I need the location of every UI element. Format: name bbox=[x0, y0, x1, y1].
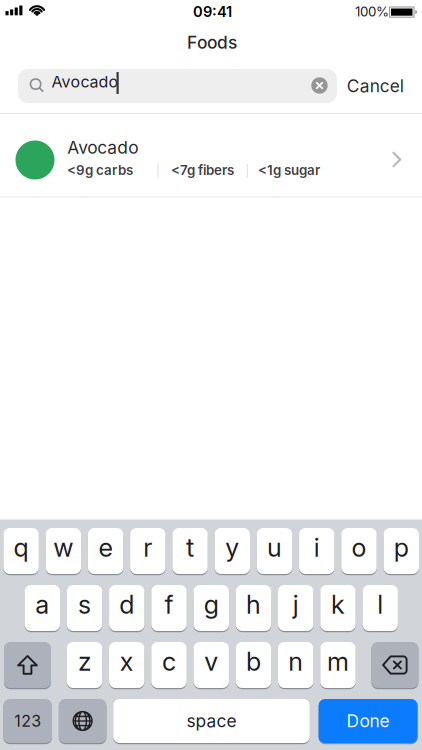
button[interactable]: e bbox=[88, 528, 123, 574]
staticText: n bbox=[288, 647, 303, 676]
button[interactable]: space bbox=[113, 699, 310, 743]
staticText: j bbox=[293, 590, 299, 619]
button[interactable]: v bbox=[193, 642, 229, 688]
staticText: d bbox=[119, 590, 134, 619]
button[interactable]: j bbox=[278, 585, 313, 631]
staticText: Avocado bbox=[67, 137, 138, 158]
staticText: 123 bbox=[14, 712, 41, 730]
staticText: s bbox=[78, 590, 91, 619]
button[interactable]: q bbox=[3, 528, 39, 574]
button[interactable]: k bbox=[320, 585, 356, 631]
button[interactable]: 123 bbox=[3, 699, 52, 743]
button[interactable]: Clear text bbox=[311, 77, 328, 94]
staticText: z bbox=[78, 647, 91, 676]
staticText: p bbox=[394, 533, 409, 562]
staticText: <7g fibers bbox=[171, 162, 234, 178]
staticText: m bbox=[327, 647, 349, 676]
button[interactable]: r bbox=[130, 528, 165, 574]
button[interactable]: u bbox=[257, 528, 292, 574]
staticText: v bbox=[204, 647, 218, 676]
staticText: Cancel bbox=[347, 76, 404, 96]
button[interactable]: y bbox=[215, 528, 250, 574]
button[interactable]: w bbox=[46, 528, 81, 574]
button[interactable]: a bbox=[25, 585, 60, 631]
staticText: t bbox=[186, 533, 194, 562]
staticText: x bbox=[120, 647, 134, 676]
staticText: c bbox=[162, 647, 176, 676]
staticText: r bbox=[143, 533, 152, 562]
button[interactable]: Avocado bbox=[0, 114, 422, 196]
staticText: y bbox=[225, 533, 239, 562]
staticText: w bbox=[53, 533, 73, 562]
staticText: i bbox=[314, 533, 320, 562]
staticText: u bbox=[267, 533, 282, 562]
button[interactable]: c bbox=[151, 642, 187, 688]
button[interactable]: x bbox=[109, 642, 144, 688]
button[interactable]: t bbox=[172, 528, 208, 574]
button[interactable]: i bbox=[299, 528, 334, 574]
staticText: f bbox=[164, 590, 173, 619]
staticText: Done bbox=[347, 711, 390, 731]
staticText: o bbox=[351, 533, 366, 562]
button[interactable]: z bbox=[67, 642, 102, 688]
staticText: space bbox=[186, 711, 236, 731]
staticText: k bbox=[331, 590, 345, 619]
staticText: b bbox=[246, 647, 261, 676]
staticText: q bbox=[14, 533, 29, 562]
button[interactable]: f bbox=[151, 585, 187, 631]
staticText: <9g carbs bbox=[67, 162, 133, 178]
staticText: <1g sugar bbox=[258, 162, 320, 178]
button[interactable]: m bbox=[320, 642, 356, 688]
staticText: Avocado bbox=[51, 72, 118, 91]
staticText: h bbox=[246, 590, 261, 619]
button[interactable]: l bbox=[362, 585, 398, 631]
button[interactable]: Search bbox=[18, 69, 337, 103]
button[interactable]: h bbox=[236, 585, 271, 631]
staticText: e bbox=[99, 533, 113, 562]
button[interactable]: Done bbox=[319, 699, 418, 743]
button[interactable]: g bbox=[194, 585, 229, 631]
button[interactable]: Shift bbox=[4, 642, 51, 688]
button[interactable]: Cancel bbox=[347, 69, 409, 103]
staticText: a bbox=[35, 590, 49, 619]
button[interactable]: Delete bbox=[371, 642, 418, 688]
staticText: l bbox=[377, 590, 383, 619]
staticText: Foods bbox=[187, 32, 237, 53]
button[interactable]: d bbox=[109, 585, 144, 631]
button[interactable]: s bbox=[67, 585, 102, 631]
button[interactable]: Next keyboard bbox=[59, 699, 106, 743]
staticText: g bbox=[204, 590, 219, 619]
button[interactable]: o bbox=[341, 528, 377, 574]
staticText: 100% bbox=[355, 4, 389, 19]
staticText: 09:41 bbox=[193, 3, 232, 20]
button[interactable]: p bbox=[384, 528, 419, 574]
button[interactable]: n bbox=[278, 642, 313, 688]
button[interactable]: b bbox=[236, 642, 271, 688]
